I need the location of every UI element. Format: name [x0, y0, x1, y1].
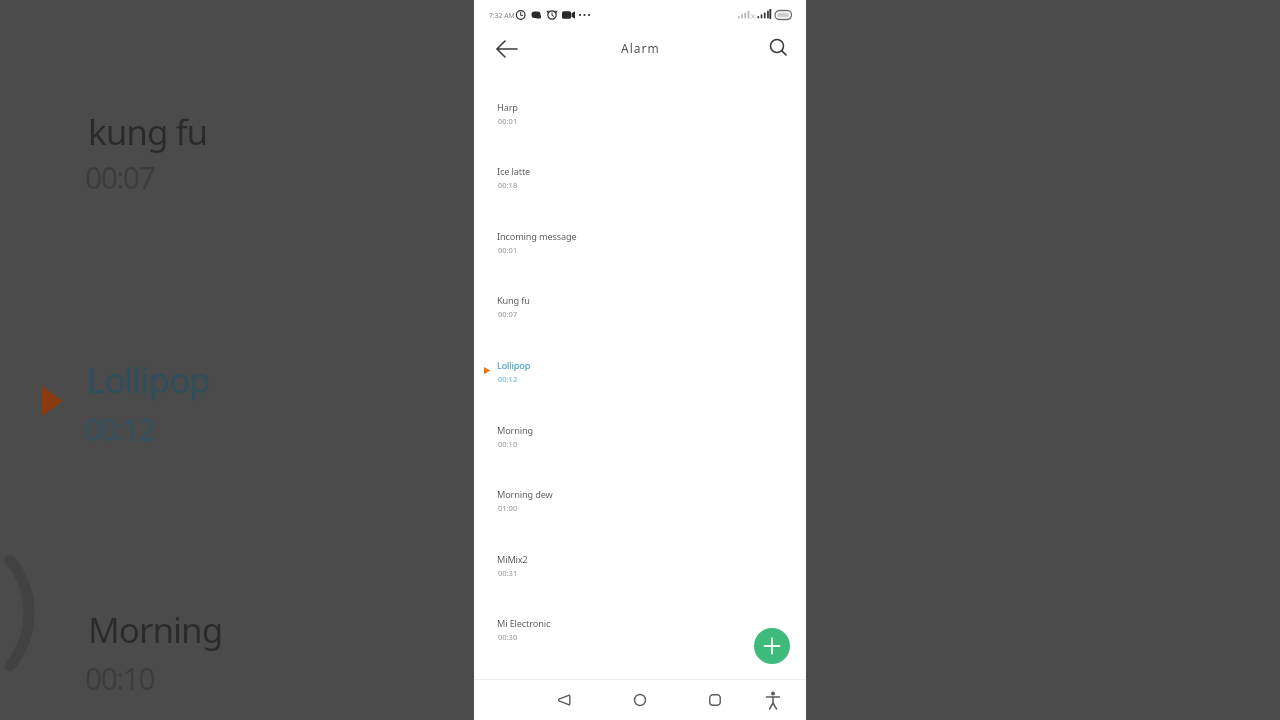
staticText: Incoming message	[497, 230, 577, 243]
staticText: 00:07	[498, 309, 518, 319]
button[interactable]	[760, 29, 796, 65]
staticText: Lollipop	[497, 359, 531, 372]
button[interactable]: Incoming message	[474, 210, 806, 268]
staticText: 00:12	[498, 374, 518, 384]
staticText: MiMix2	[497, 553, 528, 566]
staticText: Morning dew	[497, 488, 553, 501]
button[interactable]: Morning dew	[474, 468, 806, 526]
button[interactable]	[626, 686, 654, 714]
button[interactable]	[754, 628, 790, 664]
staticText: 00:01	[498, 116, 518, 126]
button[interactable]: Ice latte	[474, 145, 806, 203]
button[interactable]	[550, 686, 578, 714]
staticText: 01:00	[498, 503, 518, 513]
staticText: Mi Electronic	[497, 617, 551, 630]
staticText: 00:07	[85, 157, 155, 198]
button[interactable]: Kung fu	[474, 274, 806, 332]
button[interactable]: MiMix2	[474, 533, 806, 591]
staticText: 00:18	[498, 180, 518, 190]
staticText: 00:12	[85, 409, 155, 450]
staticText: Harp	[497, 101, 518, 114]
staticText: 00:01	[498, 245, 518, 255]
button[interactable]: Harp	[474, 81, 806, 139]
staticText: 00:10	[498, 439, 518, 449]
staticText: 00:31	[498, 568, 518, 578]
staticText: 7:32 AM	[489, 11, 515, 20]
button[interactable]: Morning	[474, 404, 806, 462]
button[interactable]: Mi Electronic	[474, 597, 806, 655]
staticText: 00:30	[498, 632, 518, 642]
staticText: Morning	[88, 606, 223, 654]
button[interactable]: Lollipop	[474, 339, 806, 397]
button[interactable]	[759, 686, 787, 714]
staticText: kung fu	[88, 108, 208, 156]
staticText: Kung fu	[497, 294, 530, 307]
staticText: Lollipop	[87, 356, 210, 404]
staticText: Morning	[497, 424, 534, 437]
staticText: 00:10	[85, 658, 155, 699]
button[interactable]	[701, 686, 729, 714]
staticText: Ice latte	[497, 165, 531, 178]
button[interactable]	[487, 29, 527, 69]
staticText: Alarm	[621, 40, 660, 56]
